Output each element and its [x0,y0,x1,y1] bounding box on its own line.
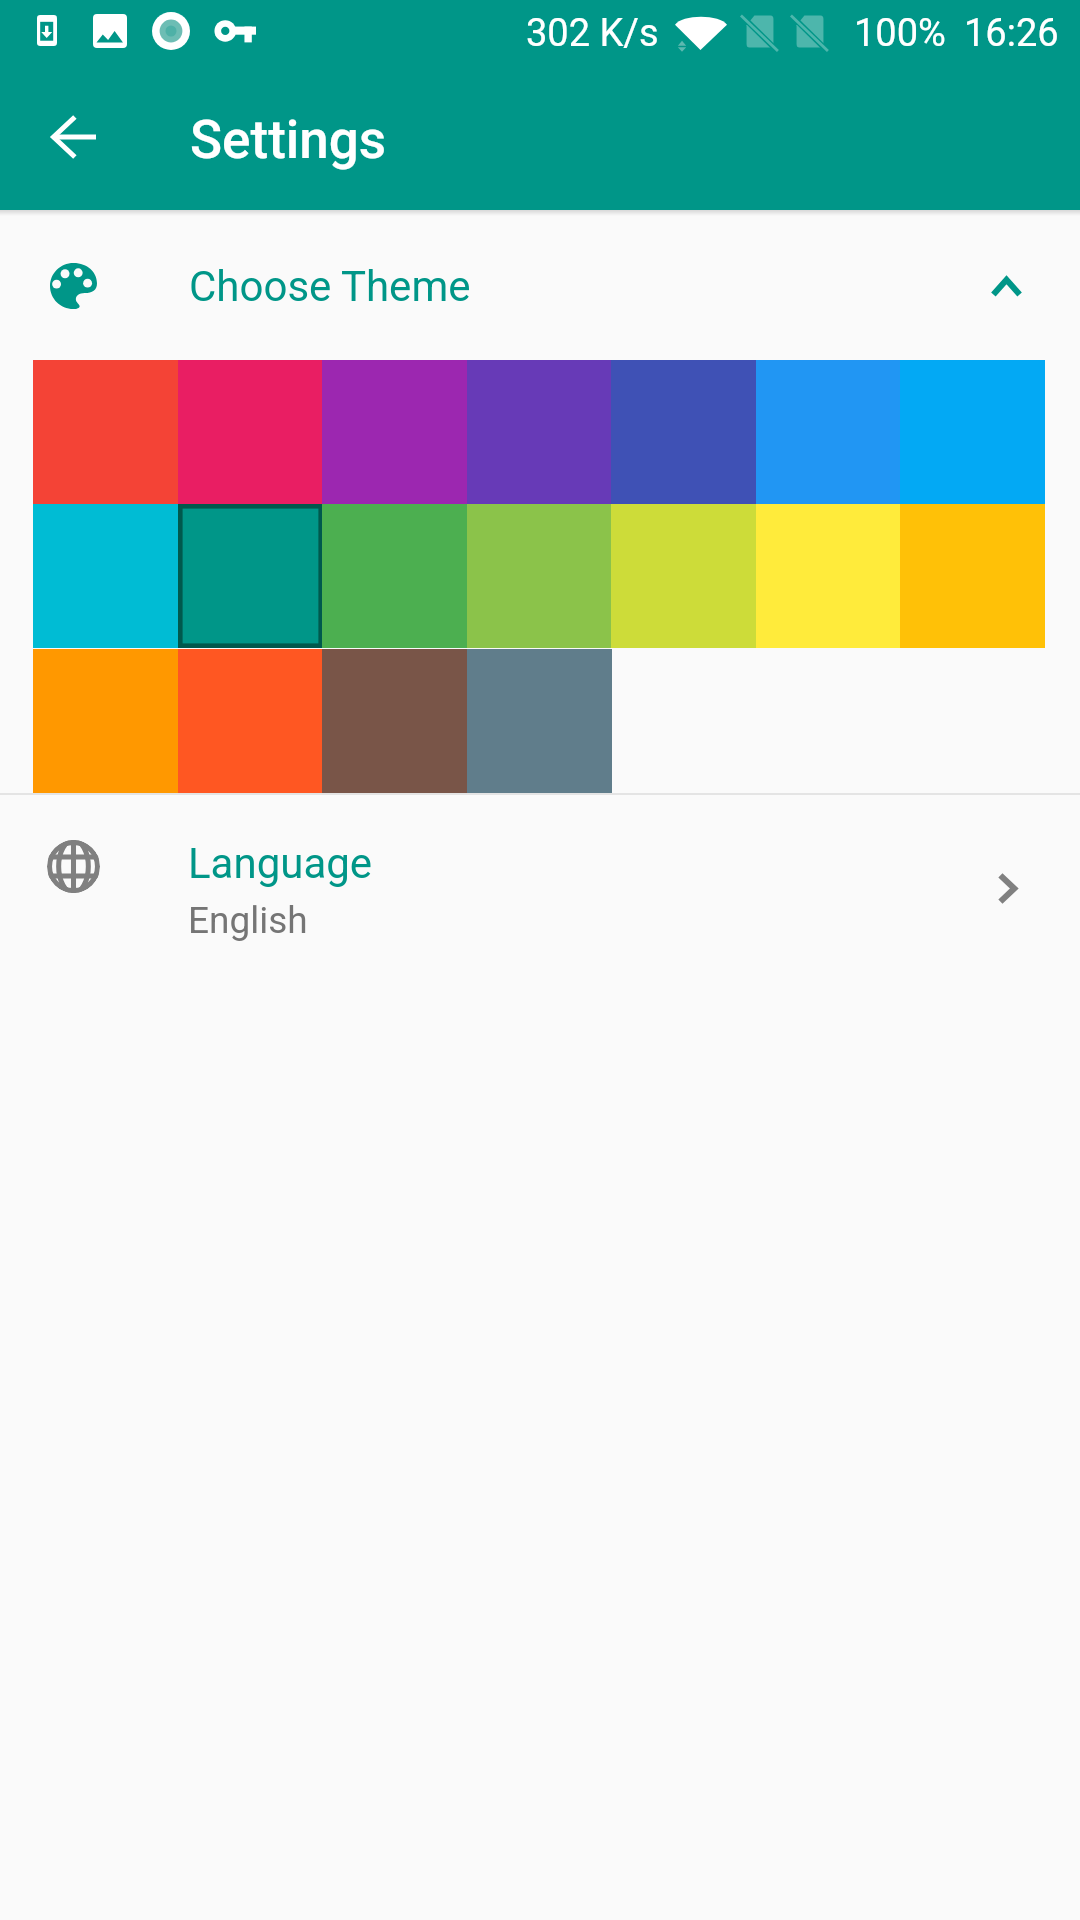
button[interactable]: Pink theme [178,360,323,504]
staticText: 100% [854,11,946,56]
staticText: 16:26 [964,11,1059,56]
button[interactable]: Deep purple theme [467,360,612,504]
button[interactable]: Deep orange theme [178,649,323,793]
staticText: English [188,899,308,942]
staticText: Settings [190,109,387,171]
button[interactable]: Collapse [962,243,1050,331]
button[interactable]: Language [0,795,1080,981]
staticText: Choose Theme [189,262,471,311]
button[interactable]: Yellow theme [756,504,901,648]
button[interactable]: Choose Theme [0,210,1080,358]
button[interactable]: Teal theme [178,504,323,648]
staticText: Language [188,839,373,888]
button[interactable]: Back [25,88,122,185]
staticText: 302 K/s [526,11,659,56]
button[interactable]: Light green theme [467,504,612,648]
button[interactable]: Open language [963,844,1051,932]
